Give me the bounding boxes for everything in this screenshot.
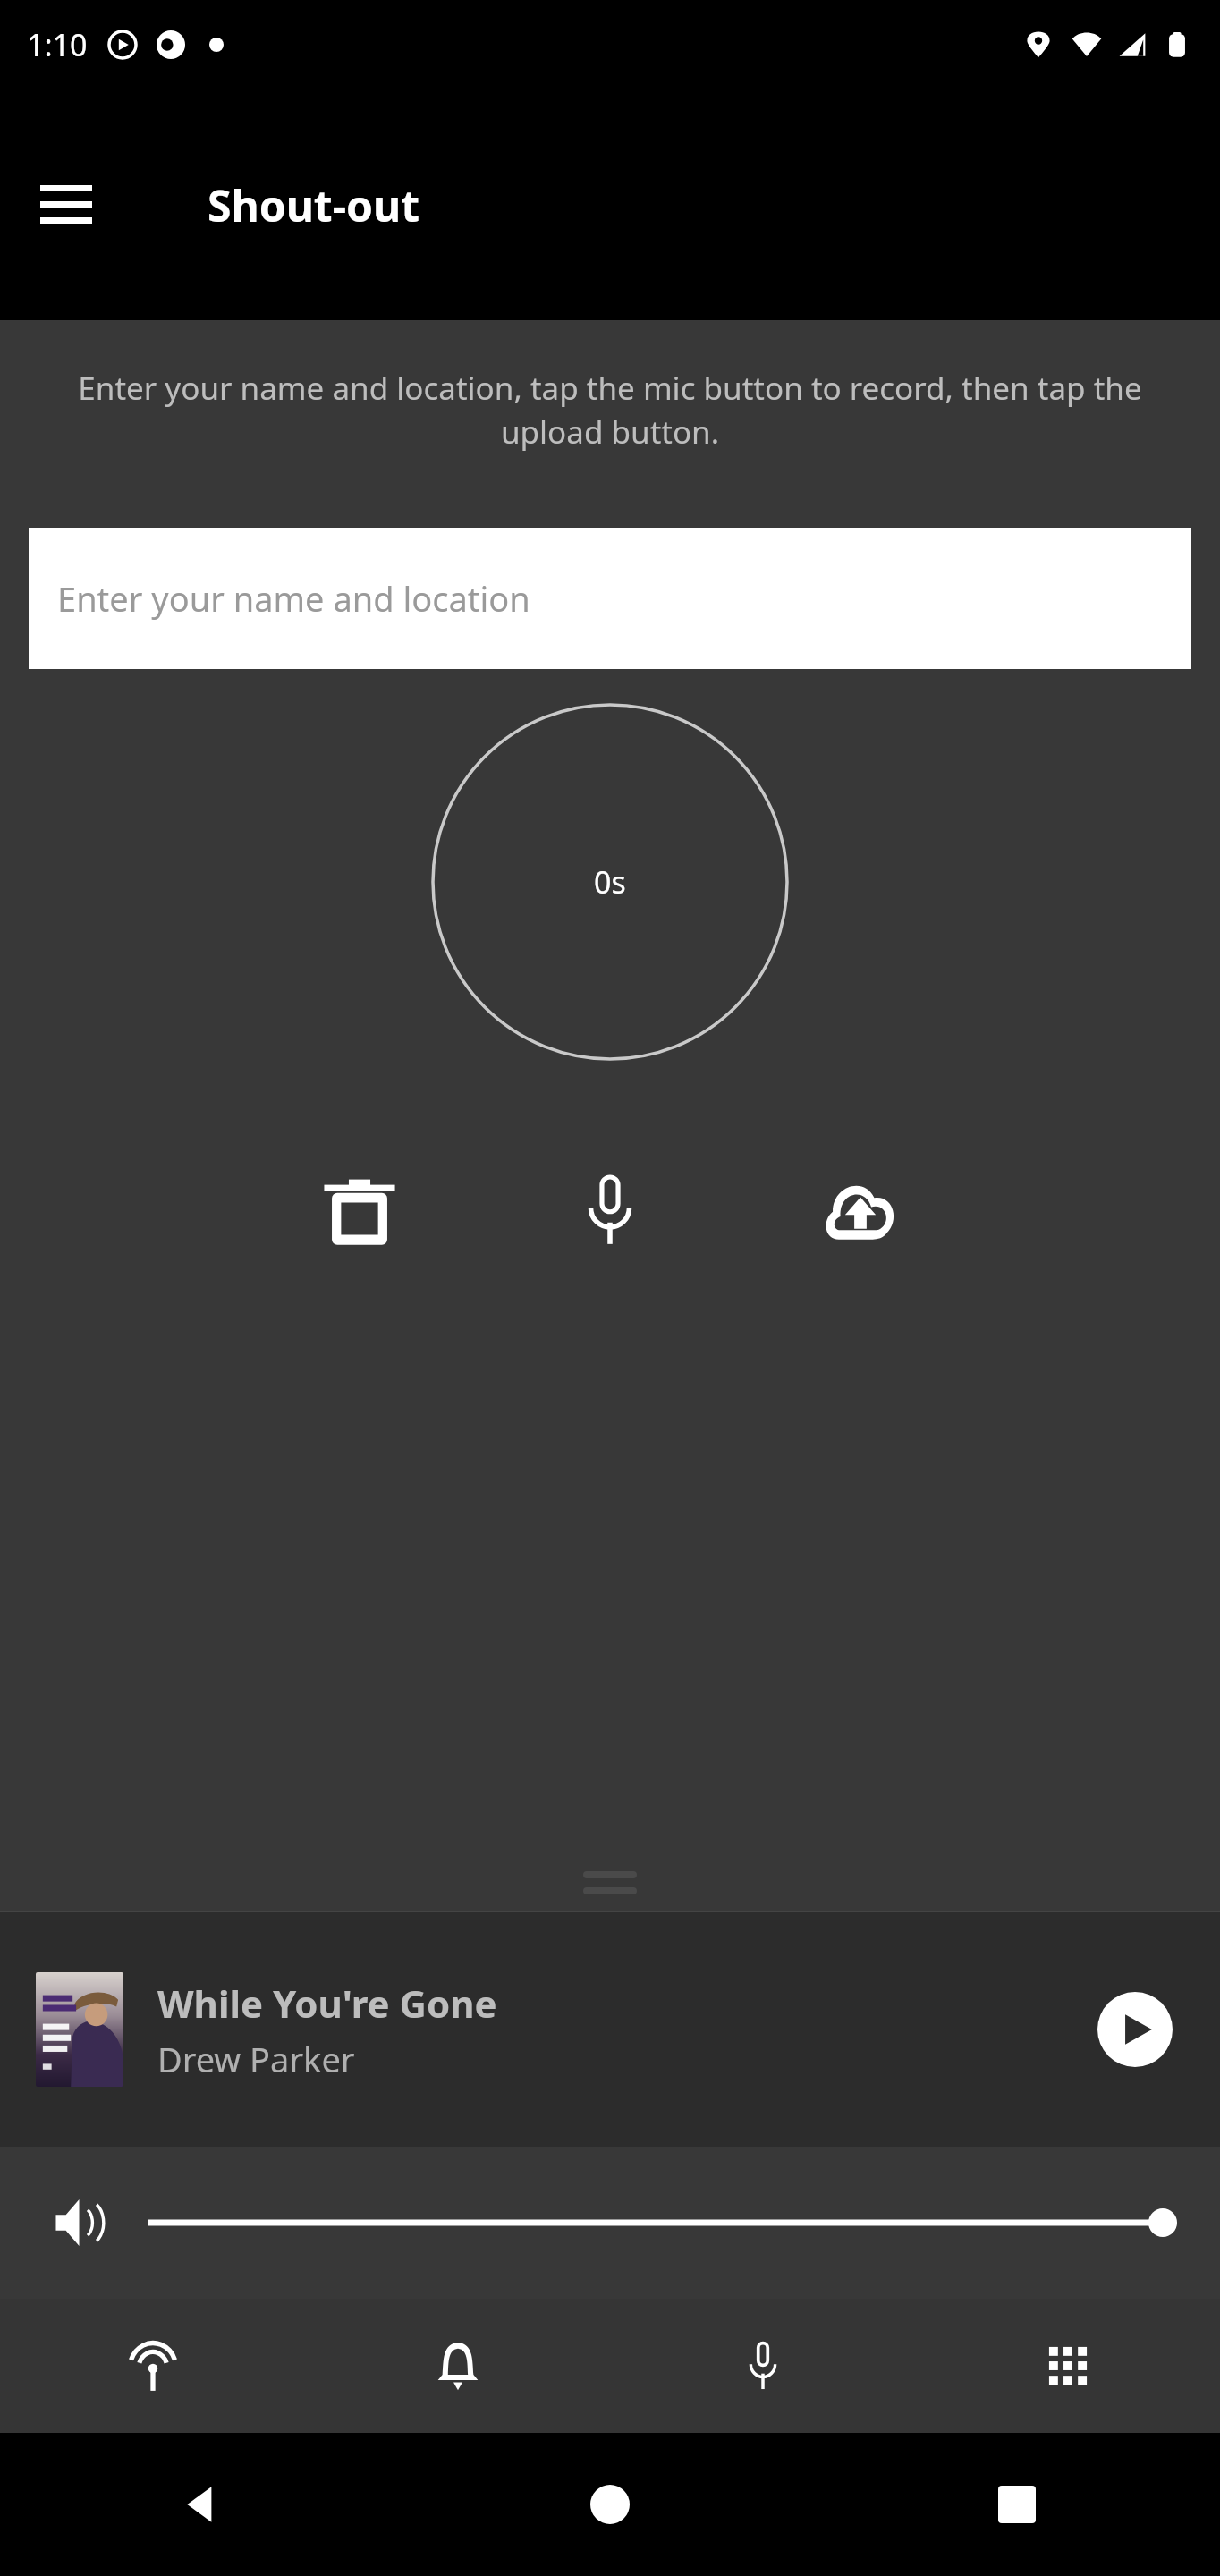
staticText: Enter your name and location, tap the mi… [59, 367, 1161, 453]
button[interactable]: Microphone [610, 2299, 915, 2433]
button[interactable]: Broadcast [0, 2299, 305, 2433]
staticText: Shout-out [208, 176, 420, 234]
button[interactable]: While You're Gone [0, 1912, 1220, 2147]
staticText: 1:10 [27, 24, 88, 65]
button[interactable]: Upload [802, 1152, 919, 1268]
button[interactable]: Notifications [305, 2299, 610, 2433]
button[interactable]: Back [0, 2433, 406, 2576]
staticText: Enter your name and location [57, 575, 530, 622]
button[interactable]: Volume [43, 2184, 120, 2261]
button[interactable]: Delete recording [301, 1152, 418, 1268]
button[interactable]: Home [406, 2433, 813, 2576]
button[interactable]: Apps [915, 2299, 1220, 2433]
staticText: Drew Parker [157, 2036, 355, 2082]
button[interactable]: Enter your name and location [29, 528, 1191, 669]
button[interactable]: Play [1086, 1980, 1184, 2079]
button[interactable]: Record [552, 1152, 668, 1268]
button[interactable]: Recording timer [431, 703, 789, 1061]
staticText: While You're Gone [157, 1978, 497, 2029]
button[interactable]: Recent apps [813, 2433, 1220, 2576]
button[interactable]: Open navigation menu [23, 162, 109, 248]
button[interactable]: Volume slider [148, 2187, 1177, 2258]
staticText: 0s [594, 861, 626, 902]
